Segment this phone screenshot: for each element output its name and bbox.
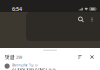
button[interactable]: Sort comments [76, 53, 83, 60]
staticText: @sunny_day 3일 전 [12, 63, 38, 67]
button[interactable]: Close comments [88, 53, 95, 60]
staticText: 댓글 [4, 54, 14, 60]
button[interactable]: More options [89, 15, 95, 24]
staticText: 이 장면 진짜 미쳤다 ㅋㅋ [12, 68, 56, 70]
staticText: 6:54 [12, 5, 22, 13]
button[interactable]: Search [76, 15, 85, 24]
button[interactable]: @sunny_day 3일 전 [0, 63, 100, 70]
staticText: 298 [16, 55, 22, 60]
